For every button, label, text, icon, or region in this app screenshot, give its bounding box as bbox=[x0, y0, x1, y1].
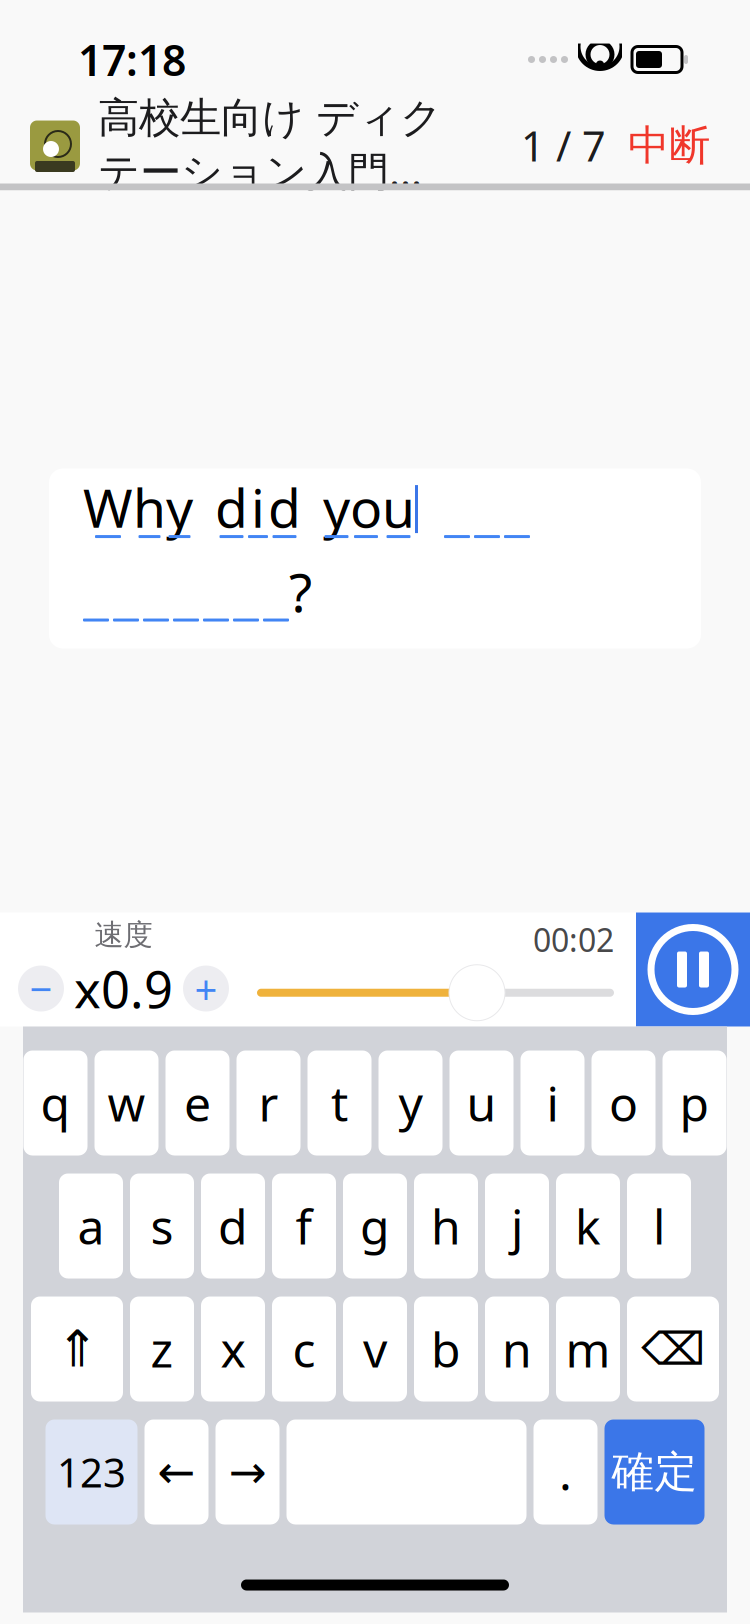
button[interactable]: r bbox=[236, 1050, 300, 1155]
staticText: h bbox=[431, 1194, 461, 1258]
staticText: e bbox=[184, 1071, 211, 1135]
staticText: r bbox=[258, 1071, 278, 1135]
button[interactable]: i bbox=[520, 1050, 584, 1155]
button[interactable]: l bbox=[627, 1173, 691, 1278]
staticText: ? bbox=[289, 556, 312, 627]
button[interactable]: m bbox=[556, 1296, 620, 1401]
staticText: ← bbox=[157, 1446, 195, 1498]
staticText: v bbox=[363, 1317, 387, 1381]
staticText: y bbox=[398, 1071, 422, 1135]
staticText: j bbox=[511, 1194, 523, 1258]
staticText: ⌫ bbox=[641, 1323, 705, 1375]
staticText: z bbox=[150, 1317, 173, 1381]
button[interactable]: n bbox=[485, 1296, 549, 1401]
button[interactable]: p bbox=[662, 1050, 726, 1155]
button[interactable]: x bbox=[201, 1296, 265, 1401]
button[interactable]: Pause bbox=[636, 912, 750, 1026]
button[interactable]: b bbox=[414, 1296, 478, 1401]
staticText: l bbox=[653, 1194, 665, 1258]
staticText: → bbox=[228, 1446, 266, 1498]
staticText: w bbox=[107, 1071, 145, 1135]
staticText: n bbox=[502, 1317, 532, 1381]
staticText: 00:02 bbox=[533, 918, 614, 961]
button[interactable]: d bbox=[201, 1173, 265, 1278]
button[interactable]: Increase speed bbox=[183, 965, 229, 1011]
button[interactable]: 確定 bbox=[604, 1419, 704, 1524]
button[interactable]: 中断 bbox=[606, 108, 732, 183]
staticText: h bbox=[133, 472, 166, 542]
button[interactable]: w bbox=[94, 1050, 158, 1155]
staticText: x bbox=[220, 1317, 245, 1381]
staticText: − bbox=[29, 962, 52, 1015]
button[interactable]: → bbox=[215, 1419, 279, 1524]
staticText: u bbox=[466, 1071, 496, 1135]
staticText: d bbox=[218, 1194, 248, 1258]
button[interactable]: a bbox=[59, 1173, 123, 1278]
button[interactable]: Decrease speed bbox=[18, 965, 64, 1011]
button[interactable]: h bbox=[414, 1173, 478, 1278]
staticText: d bbox=[268, 472, 301, 542]
button[interactable]: f bbox=[272, 1173, 336, 1278]
staticText: x0.9 bbox=[74, 955, 173, 1022]
button[interactable]: g bbox=[343, 1173, 407, 1278]
button[interactable]: q bbox=[23, 1050, 87, 1155]
staticText: f bbox=[295, 1194, 312, 1258]
button[interactable]: ⇑ bbox=[31, 1296, 123, 1401]
staticText: a bbox=[77, 1194, 104, 1258]
button[interactable]: u bbox=[449, 1050, 513, 1155]
staticText: i bbox=[546, 1071, 558, 1135]
staticText: o bbox=[609, 1071, 638, 1135]
button[interactable]: . bbox=[533, 1419, 597, 1524]
button[interactable]: e bbox=[165, 1050, 229, 1155]
staticText: 中断 bbox=[628, 120, 710, 171]
staticText: m bbox=[565, 1317, 610, 1381]
staticText: b bbox=[431, 1317, 461, 1381]
staticText: 確定 bbox=[611, 1446, 697, 1498]
button[interactable]: ← bbox=[144, 1419, 208, 1524]
staticText: + bbox=[194, 962, 217, 1015]
staticText: u bbox=[382, 472, 415, 542]
staticText: t bbox=[331, 1071, 348, 1135]
staticText: W bbox=[83, 472, 133, 542]
staticText: g bbox=[360, 1194, 390, 1258]
button[interactable]: y bbox=[378, 1050, 442, 1155]
staticText: 1 / 7 bbox=[521, 118, 606, 173]
button[interactable]: j bbox=[485, 1173, 549, 1278]
staticText: ⇑ bbox=[56, 1320, 98, 1378]
staticText: p bbox=[679, 1071, 709, 1135]
button[interactable]: ⌫ bbox=[627, 1296, 719, 1401]
staticText: q bbox=[40, 1071, 70, 1135]
staticText: 速度 bbox=[94, 917, 152, 953]
staticText: 高校生向け ディクテーション入門... bbox=[98, 93, 442, 198]
staticText: 123 bbox=[57, 1445, 126, 1498]
staticText: k bbox=[575, 1194, 601, 1258]
button[interactable]: v bbox=[343, 1296, 407, 1401]
button[interactable]: c bbox=[272, 1296, 336, 1401]
staticText: y bbox=[323, 472, 350, 542]
button[interactable]: t bbox=[307, 1050, 371, 1155]
staticText: d bbox=[215, 472, 248, 542]
staticText: . bbox=[559, 1440, 572, 1504]
staticText: 17:18 bbox=[78, 31, 186, 88]
button[interactable]: z bbox=[130, 1296, 194, 1401]
button[interactable]: k bbox=[556, 1173, 620, 1278]
staticText: i bbox=[251, 472, 265, 542]
button[interactable]: o bbox=[591, 1050, 655, 1155]
button[interactable]: s bbox=[130, 1173, 194, 1278]
staticText: o bbox=[350, 472, 382, 542]
button[interactable]: 123 bbox=[45, 1419, 137, 1524]
staticText: y bbox=[166, 472, 193, 542]
staticText: s bbox=[150, 1194, 173, 1258]
staticText: c bbox=[292, 1317, 315, 1381]
